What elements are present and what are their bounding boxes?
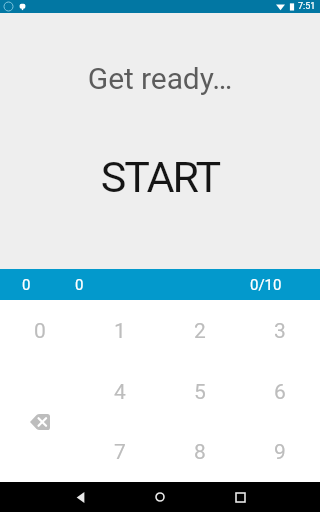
- button[interactable]: 3: [240, 300, 320, 361]
- button[interactable]: Backspace: [0, 361, 80, 482]
- staticText: 0: [75, 276, 84, 294]
- staticText: 7: [114, 440, 126, 465]
- staticText: START: [0, 152, 320, 202]
- button[interactable]: 9: [240, 421, 320, 482]
- button[interactable]: 2: [160, 300, 240, 361]
- button[interactable]: 6: [240, 361, 320, 421]
- staticText: 5: [194, 380, 206, 405]
- button[interactable]: Back: [40, 482, 120, 512]
- staticText: 2: [194, 319, 206, 344]
- button[interactable]: 5: [160, 361, 240, 421]
- staticText: Get ready…: [0, 61, 320, 96]
- staticText: 1: [114, 319, 126, 344]
- button[interactable]: 8: [160, 421, 240, 482]
- staticText: 9: [274, 440, 286, 465]
- staticText: 0/10: [250, 276, 282, 294]
- button[interactable]: 4: [80, 361, 160, 421]
- staticText: 6: [274, 380, 286, 405]
- staticText: 0: [22, 276, 31, 294]
- button[interactable]: 1: [80, 300, 160, 361]
- staticText: 4: [114, 380, 126, 405]
- button[interactable]: 7: [80, 421, 160, 482]
- button[interactable]: 0: [0, 300, 80, 361]
- staticText: 3: [274, 319, 286, 344]
- button[interactable]: Recent apps: [200, 482, 280, 512]
- staticText: 8: [194, 440, 206, 465]
- staticText: 0: [34, 319, 46, 344]
- staticText: 7:51: [298, 1, 316, 12]
- button[interactable]: Home: [120, 482, 200, 512]
